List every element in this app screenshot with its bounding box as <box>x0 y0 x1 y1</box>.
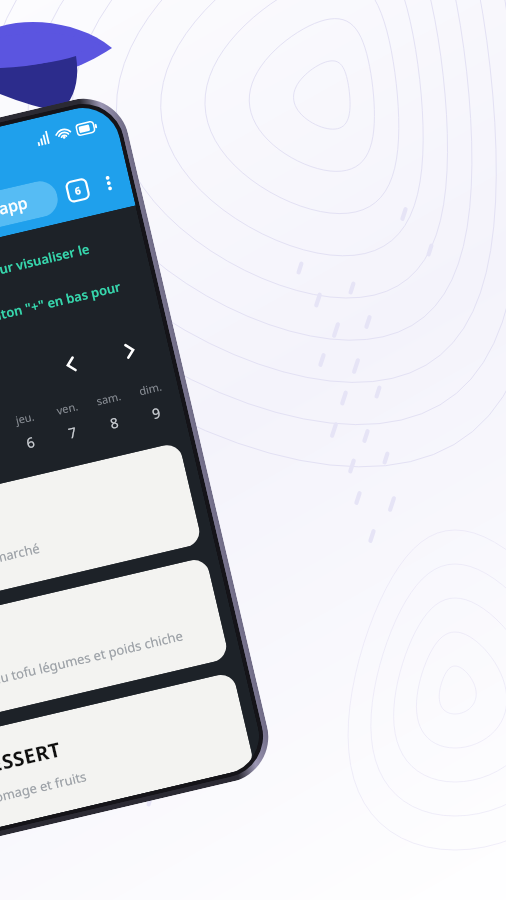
staticText: DESSERT <box>0 735 64 782</box>
staticText: Potage du marché <box>0 539 41 582</box>
staticText: 7 <box>66 422 79 443</box>
button[interactable]: ENTRÉE <box>0 442 203 609</box>
staticText: Cliquez sur une date pour visualiser le … <box>0 231 134 331</box>
button[interactable]: cantine-school.web.app <box>0 178 61 265</box>
staticText: Puis cliquez sur le bouton "+" en bas po… <box>0 273 144 374</box>
staticText: 6 <box>24 432 37 453</box>
button[interactable]: PLAT <box>0 557 229 724</box>
button[interactable]: sam. <box>84 380 139 443</box>
staticText: 8 <box>108 412 121 433</box>
staticText: cantine-school.web.app <box>0 191 30 254</box>
staticText: ven. <box>55 398 79 418</box>
staticText: dim. <box>137 379 163 398</box>
button[interactable]: Previous week <box>51 344 92 385</box>
staticText: sam. <box>95 388 122 408</box>
button[interactable]: More options <box>93 167 124 199</box>
button[interactable]: Next week <box>109 330 150 371</box>
button[interactable]: Tabs <box>62 175 93 206</box>
staticText: jeu. <box>14 408 36 427</box>
staticText: Fromage et fruits <box>0 767 89 809</box>
staticText: 9 <box>149 403 163 423</box>
button[interactable]: ven. <box>43 390 97 452</box>
staticText: Curry au tofu légumes et poids chiche <box>0 626 185 697</box>
button[interactable]: DESSERT <box>0 672 255 833</box>
staticText: 6 <box>73 183 82 198</box>
button[interactable]: dim. <box>126 370 180 433</box>
button[interactable]: jeu. <box>1 400 55 462</box>
